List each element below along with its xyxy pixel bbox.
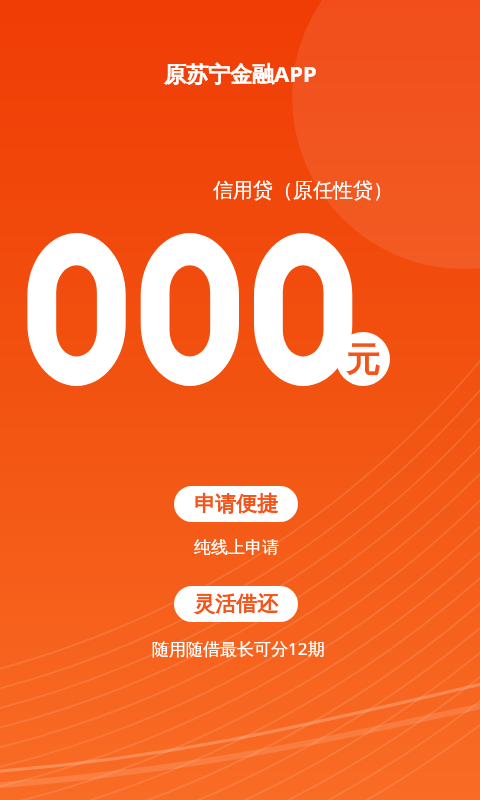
- staticText: 申请便捷: [194, 491, 278, 517]
- staticText: 元: [346, 338, 380, 381]
- staticText: 灵活借还: [194, 591, 278, 617]
- staticText: 原苏宁金融APP: [164, 58, 317, 88]
- button[interactable]: 申请便捷: [174, 486, 298, 522]
- button[interactable]: 灵活借还: [174, 586, 298, 622]
- staticText: 纯线上申请: [194, 537, 279, 558]
- staticText: 信用贷（原任性贷）: [213, 178, 393, 203]
- staticText: 随用随借最长可分12期: [152, 637, 325, 660]
